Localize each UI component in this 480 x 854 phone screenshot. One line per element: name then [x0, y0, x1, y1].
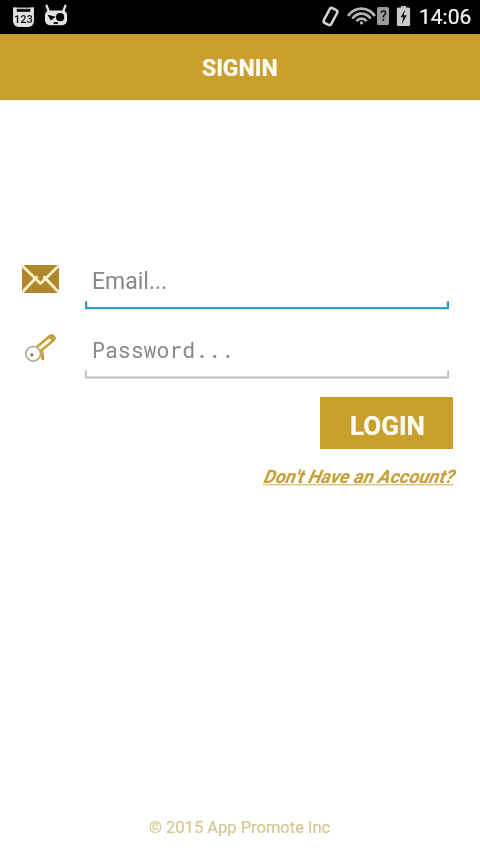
staticText: 123	[14, 13, 33, 26]
staticText: Email...	[92, 268, 168, 295]
other: Email	[16, 262, 64, 298]
staticText: © 2015 App Promote Inc	[149, 818, 331, 837]
staticText: 14:06	[419, 5, 472, 30]
staticText: ?	[380, 8, 387, 24]
button[interactable]: Email...	[85, 262, 449, 310]
button[interactable]: Password...	[85, 332, 449, 380]
staticText: Password...	[92, 335, 234, 363]
other: Password	[16, 331, 64, 367]
staticText: Don't Have an Account?	[263, 466, 454, 488]
button[interactable]: Don't Have an Account?	[263, 466, 454, 488]
staticText: SIGNIN	[202, 55, 278, 82]
button[interactable]: LOGIN	[320, 397, 453, 449]
staticText: LOGIN	[350, 411, 425, 441]
